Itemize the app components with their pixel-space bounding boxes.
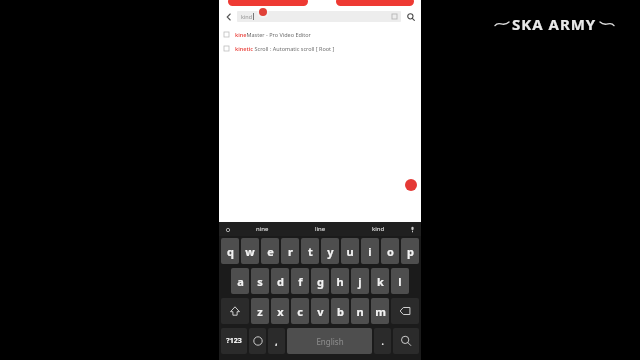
button[interactable]: Search — [405, 11, 417, 23]
button[interactable]: v — [311, 298, 329, 324]
staticText: w — [245, 244, 255, 259]
button[interactable]: r — [281, 238, 299, 264]
button[interactable]: . — [374, 328, 391, 354]
staticText: m — [375, 304, 386, 319]
button[interactable]: kinetic Scroll : Automatic scroll [ Root… — [219, 42, 421, 55]
staticText: r — [288, 244, 293, 259]
button[interactable]: d — [271, 268, 289, 294]
button[interactable]: kineMaster - Pro Video Editor — [219, 28, 421, 41]
staticText: z — [257, 304, 263, 319]
button[interactable]: o — [381, 238, 399, 264]
button[interactable]: u — [341, 238, 359, 264]
button[interactable]: f — [291, 268, 309, 294]
staticText: n — [356, 304, 364, 319]
staticText: o — [387, 244, 394, 259]
button[interactable]: t — [301, 238, 319, 264]
staticText: g — [317, 274, 324, 289]
staticText: e — [267, 244, 274, 259]
staticText: line — [315, 225, 326, 233]
staticText: ?123 — [226, 336, 242, 346]
button[interactable]: nine — [233, 222, 291, 236]
button[interactable]: b — [331, 298, 349, 324]
button[interactable]: x — [271, 298, 289, 324]
staticText: . — [381, 336, 384, 347]
staticText: d — [277, 274, 284, 289]
staticText: y — [327, 244, 334, 259]
button[interactable]: y — [321, 238, 339, 264]
button[interactable]: p — [401, 238, 419, 264]
button[interactable]: m — [371, 298, 389, 324]
button[interactable]: n — [351, 298, 369, 324]
button[interactable]: w — [241, 238, 259, 264]
button[interactable]: g — [311, 268, 329, 294]
staticText: a — [237, 274, 244, 289]
button[interactable]: Voice input — [407, 224, 418, 235]
staticText: kind — [241, 13, 253, 20]
button[interactable]: line — [291, 222, 349, 236]
button[interactable]: i — [361, 238, 379, 264]
staticText: p — [407, 244, 414, 259]
staticText: u — [346, 244, 354, 259]
staticText: j — [358, 274, 362, 289]
button[interactable]: h — [331, 268, 349, 294]
staticText: kinetic Scroll : Automatic scroll [ Root… — [235, 45, 335, 52]
staticText: SKA ARMY — [512, 14, 597, 34]
button[interactable]: q — [221, 238, 239, 264]
button[interactable]: Shift — [221, 298, 249, 324]
button[interactable]: kind — [237, 11, 401, 22]
staticText: f — [298, 274, 303, 289]
button[interactable]: Back — [223, 11, 235, 23]
staticText: v — [317, 304, 324, 319]
staticText: k — [377, 274, 384, 289]
staticText: i — [368, 244, 372, 259]
button[interactable]: Settings — [222, 224, 233, 235]
button[interactable]: Backspace — [391, 298, 419, 324]
staticText: nine — [256, 225, 269, 233]
button[interactable]: Create — [405, 179, 417, 191]
button[interactable]: Emoji — [249, 328, 266, 354]
button[interactable]: a — [231, 268, 249, 294]
button[interactable]: Search — [393, 328, 419, 354]
staticText: English — [316, 336, 344, 347]
button[interactable]: j — [351, 268, 369, 294]
staticText: s — [257, 274, 263, 289]
staticText: , — [275, 336, 278, 347]
staticText: x — [277, 304, 284, 319]
staticText: l — [398, 274, 402, 289]
button[interactable]: e — [261, 238, 279, 264]
button[interactable] — [336, 0, 414, 6]
button[interactable]: English — [287, 328, 372, 354]
button[interactable]: ?123 — [221, 328, 247, 354]
staticText: c — [297, 304, 303, 319]
staticText: b — [337, 304, 344, 319]
button[interactable]: l — [391, 268, 409, 294]
staticText: kineMaster - Pro Video Editor — [235, 31, 311, 38]
button[interactable]: s — [251, 268, 269, 294]
button[interactable]: c — [291, 298, 309, 324]
staticText: kind — [372, 225, 385, 233]
staticText: t — [308, 244, 313, 259]
button[interactable] — [228, 0, 308, 6]
button[interactable]: k — [371, 268, 389, 294]
staticText: q — [227, 244, 234, 259]
staticText: h — [336, 274, 344, 289]
button[interactable]: kind — [349, 222, 407, 236]
button[interactable]: z — [251, 298, 269, 324]
button[interactable]: , — [268, 328, 285, 354]
